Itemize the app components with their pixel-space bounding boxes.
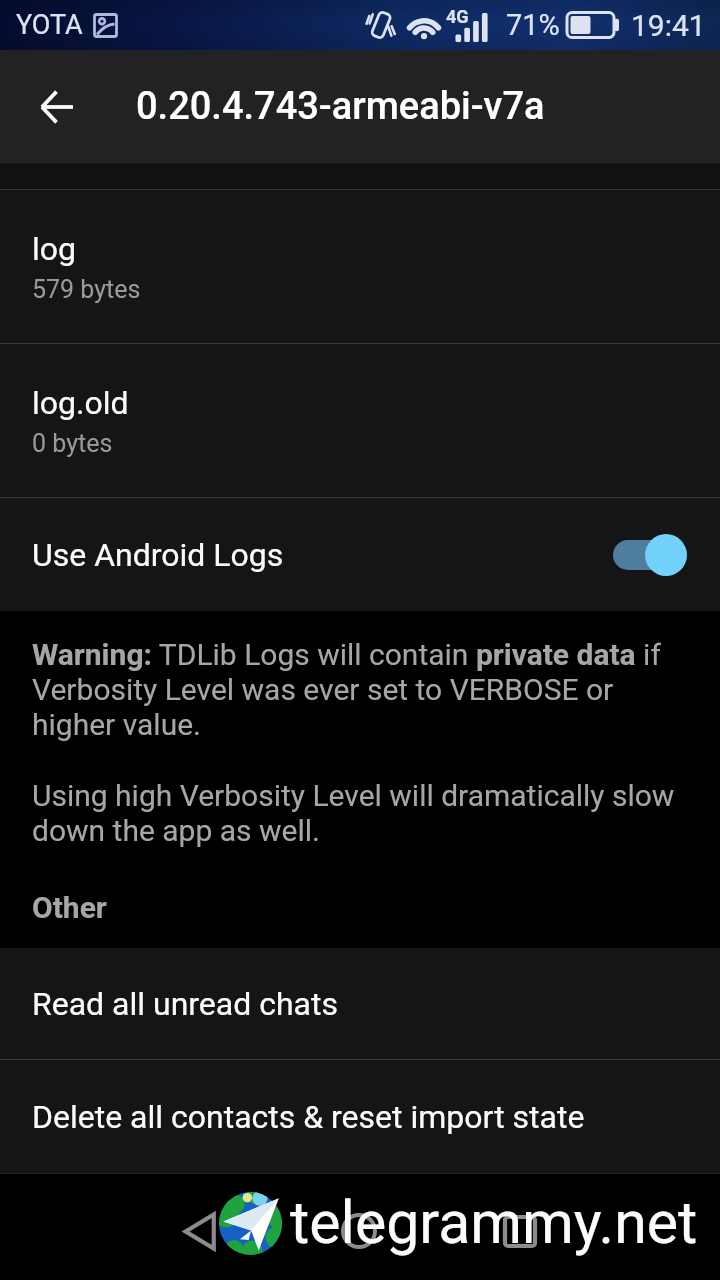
staticText: YOTA	[16, 9, 83, 41]
staticText: Using high Verbosity Level will dramatic…	[32, 778, 696, 848]
button[interactable]: Delete all contacts & reset import state	[0, 1060, 720, 1173]
staticText: 19:41	[631, 8, 706, 43]
button[interactable]: Read all unread chats	[0, 948, 720, 1059]
staticText: Other	[32, 890, 107, 925]
staticText: 0.20.4.743-armeabi-v7a	[136, 84, 545, 129]
button[interactable]: log	[0, 190, 720, 343]
button[interactable]: Navigate up	[16, 50, 96, 163]
staticText: log.old	[32, 384, 129, 422]
staticText: 0 bytes	[32, 429, 113, 458]
staticText: Delete all contacts & reset import state	[32, 1098, 585, 1136]
staticText: 579 bytes	[32, 275, 141, 304]
staticText: Use Android Logs	[32, 536, 284, 574]
staticText: telegrammy.net	[290, 1188, 698, 1257]
button[interactable]: Recent apps	[460, 1180, 580, 1280]
button[interactable]: Use Android Logs	[0, 498, 720, 611]
staticText: Read all unread chats	[32, 985, 338, 1023]
staticText: 4G	[446, 6, 469, 27]
button[interactable]: Use Android Logs toggle	[613, 534, 688, 576]
staticText: 71%	[506, 8, 560, 42]
staticText: Warning: TDLib Logs will contain private…	[32, 637, 696, 742]
button[interactable]: Back	[140, 1180, 260, 1280]
staticText: log	[32, 230, 76, 268]
button[interactable]: Home	[299, 1180, 419, 1280]
button[interactable]: log.old	[0, 344, 720, 497]
